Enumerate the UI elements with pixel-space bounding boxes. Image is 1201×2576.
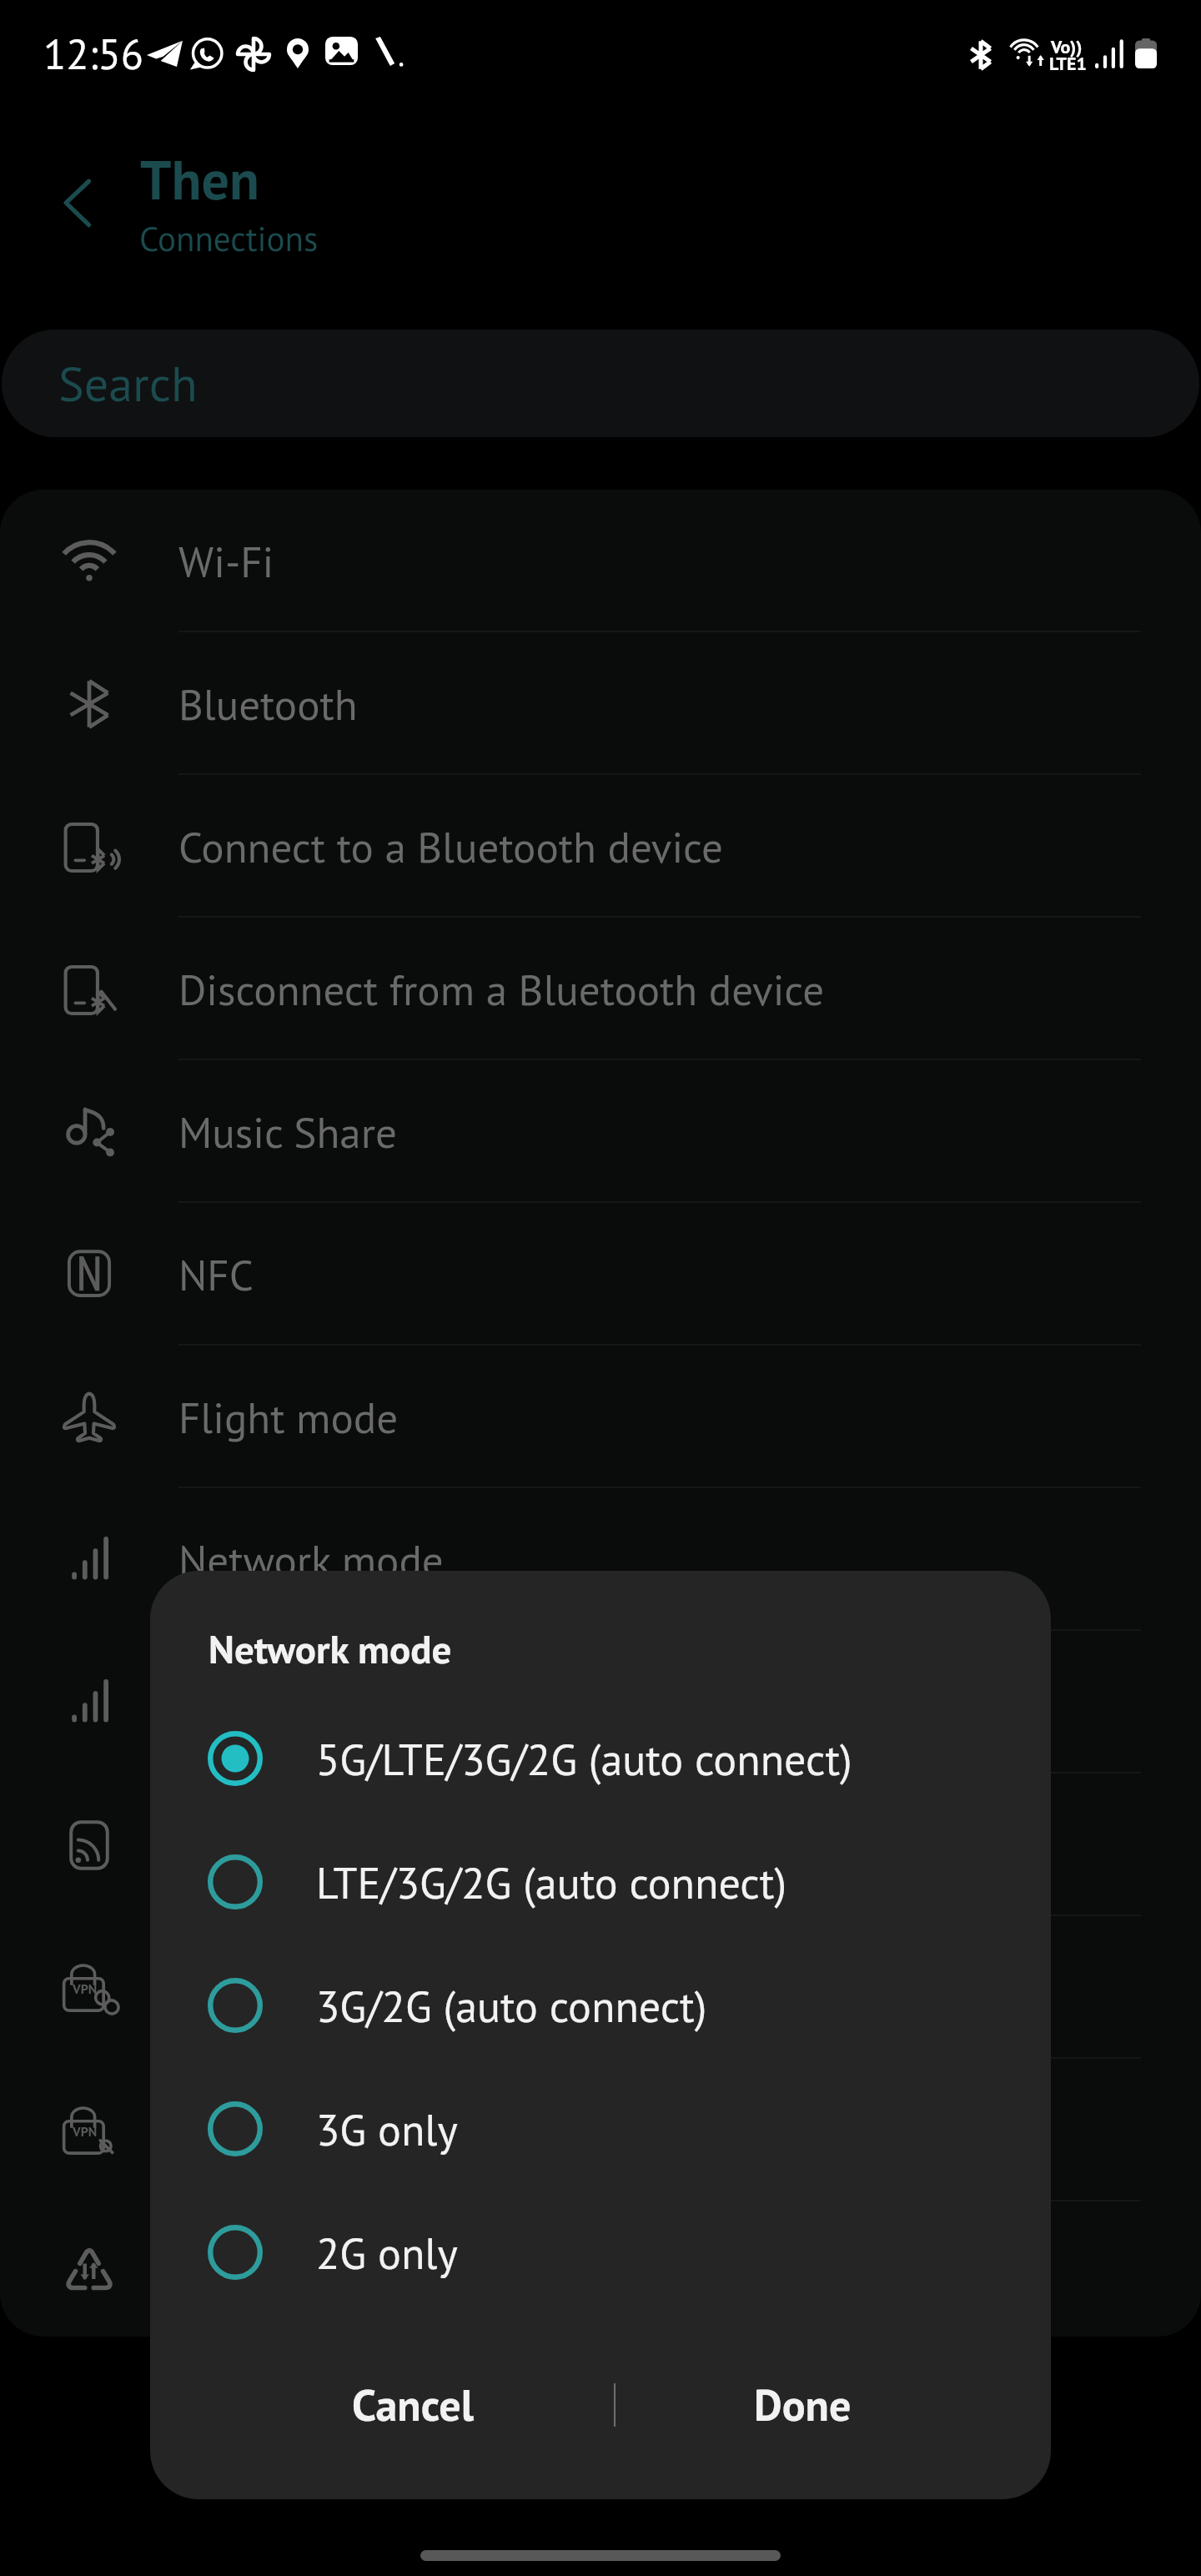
button[interactable]: Bluetooth bbox=[0, 632, 1201, 775]
staticText: Wi-Fi bbox=[178, 534, 274, 589]
button[interactable]: Data usage bbox=[0, 2201, 1201, 2337]
button[interactable]: Connect to a Bluetooth device bbox=[0, 775, 1201, 918]
staticText: Disconnect from a Bluetooth device bbox=[178, 962, 825, 1017]
button[interactable]: Wi-Fi bbox=[0, 490, 1201, 632]
staticText: VPN bbox=[73, 2123, 98, 2141]
staticText: 5G/LTE/3G/2G (auto connect) bbox=[316, 1731, 852, 1787]
button[interactable]: Smart View bbox=[0, 1774, 1201, 1916]
staticText: Data usage bbox=[178, 2241, 381, 2297]
button[interactable]: NFC bbox=[0, 1203, 1201, 1346]
staticText: Cancel bbox=[352, 2377, 474, 2433]
button[interactable]: Search bbox=[2, 330, 1199, 437]
staticText: Connect to a Bluetooth device bbox=[178, 819, 723, 874]
button[interactable]: LTE/3G/2G (auto connect) bbox=[150, 1820, 1051, 1944]
button[interactable]: 3G/2G (auto connect) bbox=[150, 1944, 1051, 2067]
staticText: VPN bbox=[178, 1960, 255, 2015]
staticText: 3G/2G (auto connect) bbox=[316, 1978, 707, 2034]
staticText: Flight mode bbox=[178, 1390, 399, 1445]
staticText: 12:56 bbox=[43, 27, 143, 81]
staticText: LTE/3G/2G (auto connect) bbox=[316, 1854, 786, 1910]
staticText: NFC bbox=[178, 1247, 254, 1302]
button[interactable]: Music Share bbox=[0, 1060, 1201, 1203]
staticText: Then bbox=[140, 143, 259, 214]
button[interactable]: VPN bbox=[0, 1916, 1201, 2059]
staticText: Music Share bbox=[178, 1104, 397, 1160]
staticText: VPN bbox=[73, 1980, 98, 1998]
staticText: 2G only bbox=[316, 2225, 458, 2281]
staticText: Network mode bbox=[209, 1623, 452, 1674]
staticText: Private DNS bbox=[178, 2103, 394, 2158]
button[interactable]: Cancel bbox=[192, 2325, 634, 2483]
staticText: LTE1 bbox=[1049, 52, 1087, 75]
staticText: Search bbox=[58, 352, 198, 415]
button[interactable]: Disconnect from a Bluetooth device bbox=[0, 918, 1201, 1060]
button[interactable]: 3G only bbox=[150, 2067, 1051, 2191]
button[interactable]: Flight mode bbox=[0, 1346, 1201, 1488]
staticText: 3G only bbox=[316, 2101, 458, 2157]
staticText: Bluetooth bbox=[178, 677, 358, 732]
staticText: Vo)) bbox=[1051, 35, 1083, 58]
staticText: Done bbox=[754, 2377, 852, 2433]
button[interactable]: Mobile networks bbox=[0, 1631, 1201, 1774]
staticText: Connections bbox=[139, 216, 319, 260]
button[interactable]: Navigate up bbox=[49, 159, 118, 228]
button[interactable]: 2G only bbox=[150, 2191, 1051, 2314]
staticText: Smart View bbox=[178, 1818, 385, 1873]
button[interactable]: Network mode bbox=[0, 1488, 1201, 1631]
button[interactable]: Done bbox=[591, 2325, 1014, 2483]
button[interactable]: VPN bbox=[0, 2059, 1201, 2201]
button[interactable]: 5G/LTE/3G/2G (auto connect) bbox=[150, 1697, 1051, 1820]
staticText: Network mode bbox=[178, 1532, 444, 1587]
